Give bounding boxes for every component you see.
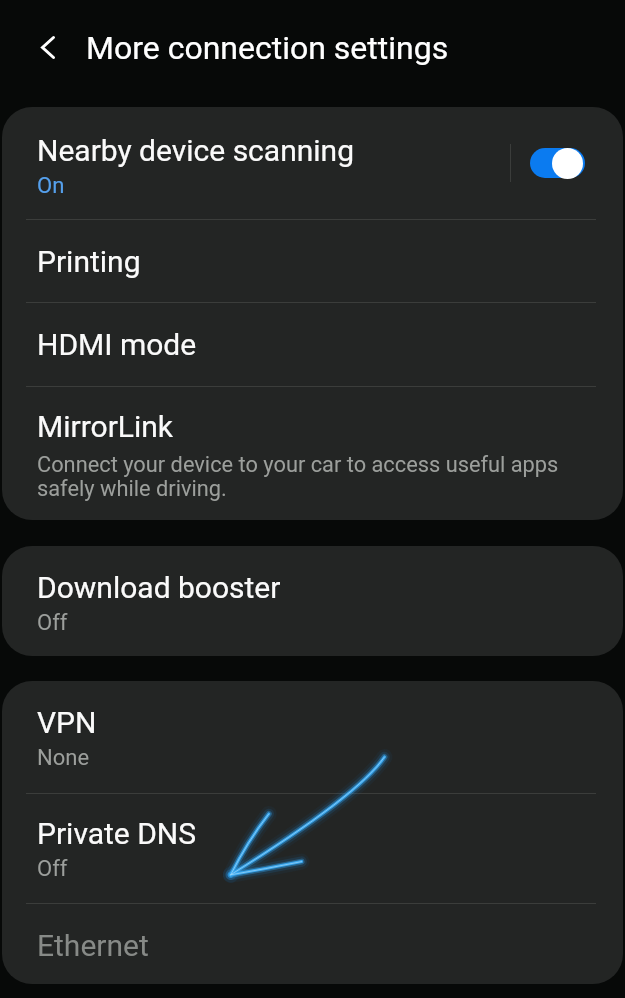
- button[interactable]: MirrorLink: [2, 386, 623, 520]
- staticText: Nearby device scanning: [37, 133, 354, 168]
- staticText: VPN: [37, 705, 97, 740]
- button[interactable]: Printing: [2, 219, 623, 302]
- staticText: Off: [37, 610, 68, 636]
- button[interactable]: Nearby device scanning switch: [530, 143, 586, 183]
- staticText: On: [37, 173, 65, 199]
- staticText: None: [37, 745, 90, 771]
- button[interactable]: HDMI mode: [2, 302, 623, 386]
- staticText: Connect your device to your car to acces…: [37, 452, 559, 501]
- staticText: Printing: [37, 244, 141, 279]
- staticText: Download booster: [37, 570, 281, 605]
- button[interactable]: Nearby device scanning: [2, 107, 623, 219]
- staticText: Private DNS: [37, 816, 197, 851]
- button[interactable]: Navigate up: [20, 19, 76, 75]
- button[interactable]: Private DNS: [2, 793, 623, 903]
- staticText: More connection settings: [86, 29, 449, 67]
- staticText: MirrorLink: [37, 409, 174, 444]
- staticText: HDMI mode: [37, 327, 197, 362]
- staticText: Off: [37, 856, 68, 882]
- button[interactable]: Ethernet: [2, 903, 623, 984]
- button[interactable]: Download booster: [2, 546, 623, 656]
- button[interactable]: VPN: [2, 681, 623, 793]
- staticText: Ethernet: [37, 928, 149, 963]
